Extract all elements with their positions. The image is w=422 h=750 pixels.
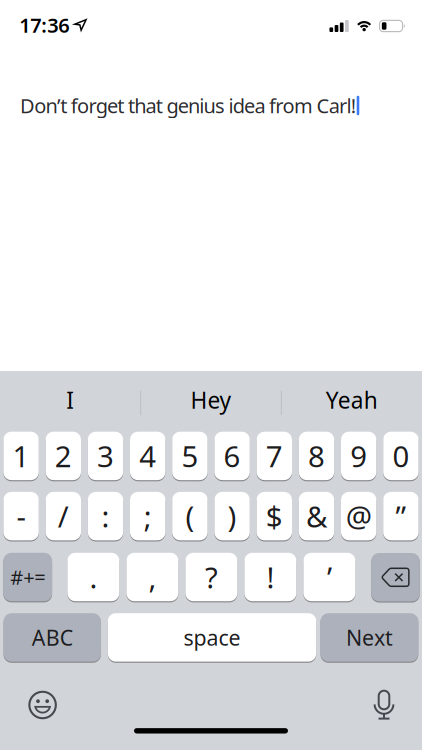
button[interactable]: ( [172, 492, 208, 540]
button[interactable]: Delete [371, 553, 420, 601]
staticText: Yeah [326, 385, 378, 415]
staticText: ABC [32, 623, 73, 651]
button[interactable]: 5 [172, 432, 208, 480]
staticText: #+= [10, 564, 45, 590]
staticText: & [306, 497, 327, 536]
staticText: - [17, 497, 26, 536]
staticText: Hey [190, 385, 231, 415]
button[interactable]: ! [244, 553, 296, 601]
button[interactable]: ’ [303, 553, 355, 601]
staticText: 7 [266, 436, 283, 475]
staticText: ! [266, 557, 274, 596]
staticText: 3 [97, 436, 114, 475]
button[interactable]: ” [383, 492, 419, 540]
staticText: : [101, 497, 109, 536]
button[interactable]: : [88, 492, 123, 540]
button[interactable]: 1 [3, 432, 39, 480]
button[interactable]: ) [214, 492, 250, 540]
button[interactable]: 8 [299, 432, 334, 480]
staticText: @ [346, 497, 372, 536]
button[interactable]: 9 [341, 432, 376, 480]
staticText: ( [185, 497, 194, 536]
button[interactable]: ; [130, 492, 165, 540]
button[interactable]: Emoji [21, 683, 65, 727]
button[interactable]: Hey [142, 377, 280, 423]
staticText: 2 [55, 436, 72, 475]
button[interactable]: Next [320, 613, 418, 662]
button[interactable]: 6 [214, 432, 250, 480]
staticText: ’ [327, 557, 332, 596]
staticText: , [148, 557, 156, 596]
button[interactable]: , [126, 553, 178, 601]
button[interactable]: / [46, 492, 81, 540]
staticText: . [89, 557, 97, 596]
button[interactable]: ? [185, 553, 237, 601]
staticText: I [66, 385, 74, 415]
staticText: 1 [13, 436, 30, 475]
button[interactable]: I [1, 377, 139, 423]
staticText: 6 [224, 436, 241, 475]
staticText: ? [205, 557, 218, 596]
staticText: 5 [181, 436, 198, 475]
staticText: 0 [392, 436, 409, 475]
button[interactable]: space [108, 613, 316, 662]
button[interactable]: 4 [130, 432, 165, 480]
staticText: 4 [139, 436, 156, 475]
staticText: 9 [350, 436, 367, 475]
button[interactable]: - [3, 492, 39, 540]
button[interactable]: & [299, 492, 334, 540]
staticText: ) [228, 497, 237, 536]
staticText: $ [266, 497, 283, 536]
button[interactable]: @ [341, 492, 376, 540]
button[interactable]: 0 [383, 432, 419, 480]
button[interactable]: #+= [3, 553, 52, 601]
staticText: Don’t forget that genius idea from Carl! [20, 92, 356, 119]
button[interactable]: ABC [4, 613, 101, 662]
staticText: space [184, 623, 241, 651]
button[interactable]: $ [257, 492, 292, 540]
staticText: 8 [308, 436, 325, 475]
staticText: ” [395, 497, 406, 536]
button[interactable]: . [67, 553, 119, 601]
staticText: ; [144, 497, 152, 536]
button[interactable]: 2 [46, 432, 81, 480]
button[interactable]: 3 [88, 432, 123, 480]
button[interactable]: 7 [257, 432, 292, 480]
staticText: Next [346, 623, 393, 651]
staticText: 17:36 [19, 12, 69, 38]
button[interactable]: Yeah [283, 377, 421, 423]
staticText: / [58, 497, 69, 536]
button[interactable]: Dictate [362, 683, 406, 727]
